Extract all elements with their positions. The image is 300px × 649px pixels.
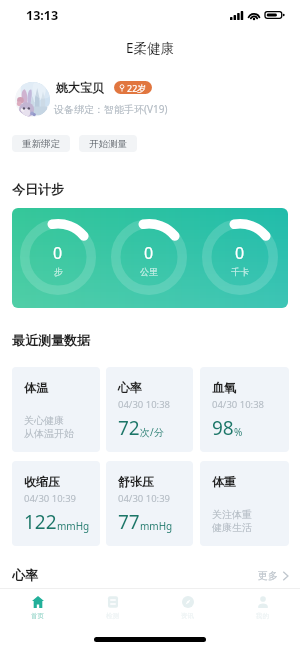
button[interactable]: 收缩压 <box>12 461 100 546</box>
staticText: 0 <box>144 242 154 264</box>
staticText: 关注体重 <box>212 508 252 521</box>
staticText: 开始测量 <box>89 138 127 150</box>
button[interactable]: 检测 <box>75 589 150 627</box>
staticText: % <box>234 425 243 439</box>
staticText: 体温 <box>24 380 48 395</box>
staticText: 我的 <box>256 612 269 620</box>
staticText: 心率 <box>12 567 38 583</box>
button[interactable]: 更多 <box>258 569 289 582</box>
button[interactable]: 舒张压 <box>106 461 193 546</box>
staticText: 更多 <box>258 569 278 582</box>
button[interactable]: 资讯 <box>150 589 225 627</box>
staticText: 从体温开始 <box>24 427 74 440</box>
button[interactable]: 首页 <box>0 589 75 627</box>
staticText: 22岁 <box>127 82 147 94</box>
staticText: 04/30 10:38 <box>118 398 171 411</box>
staticText: 心率 <box>118 380 142 395</box>
button[interactable]: 体温 <box>12 367 100 452</box>
button[interactable]: 心率 <box>106 367 193 452</box>
staticText: 122 <box>24 509 57 535</box>
staticText: 收缩压 <box>24 474 60 489</box>
staticText: 13:13 <box>26 7 59 24</box>
staticText: 健康生活 <box>212 521 252 534</box>
staticText: 步 <box>54 266 63 277</box>
staticText: 检测 <box>106 612 119 620</box>
staticText: 重新绑定 <box>22 138 60 150</box>
staticText: 关心健康 <box>24 414 64 427</box>
staticText: 04/30 10:39 <box>24 492 77 505</box>
staticText: 次/分 <box>140 425 164 439</box>
staticText: 舒张压 <box>118 474 154 489</box>
staticText: 最近测量数据 <box>12 332 90 348</box>
staticText: 资讯 <box>181 612 194 620</box>
button[interactable]: 体重 <box>200 461 289 546</box>
staticText: 98 <box>212 415 234 441</box>
staticText: 姚大宝贝 <box>56 80 104 95</box>
staticText: mmHg <box>57 519 90 533</box>
staticText: 血氧 <box>212 380 236 395</box>
staticText: 0 <box>235 242 245 264</box>
staticText: 77 <box>118 509 140 535</box>
staticText: 72 <box>118 415 140 441</box>
button[interactable]: 开始测量 <box>79 135 137 152</box>
button[interactable]: 我的 <box>225 589 300 627</box>
staticText: 千卡 <box>231 266 249 277</box>
staticText: 04/30 10:39 <box>118 492 171 505</box>
staticText: 0 <box>53 242 63 264</box>
staticText: E柔健康 <box>126 39 175 57</box>
staticText: 体重 <box>212 474 236 489</box>
staticText: 设备绑定：智能手环(V19) <box>54 102 168 116</box>
staticText: 04/30 10:38 <box>212 398 265 411</box>
staticText: 今日计步 <box>12 181 64 197</box>
button[interactable]: 重新绑定 <box>12 135 70 152</box>
button[interactable]: 血氧 <box>200 367 289 452</box>
staticText: mmHg <box>140 519 173 533</box>
staticText: 首页 <box>31 612 44 620</box>
staticText: 公里 <box>140 266 158 277</box>
